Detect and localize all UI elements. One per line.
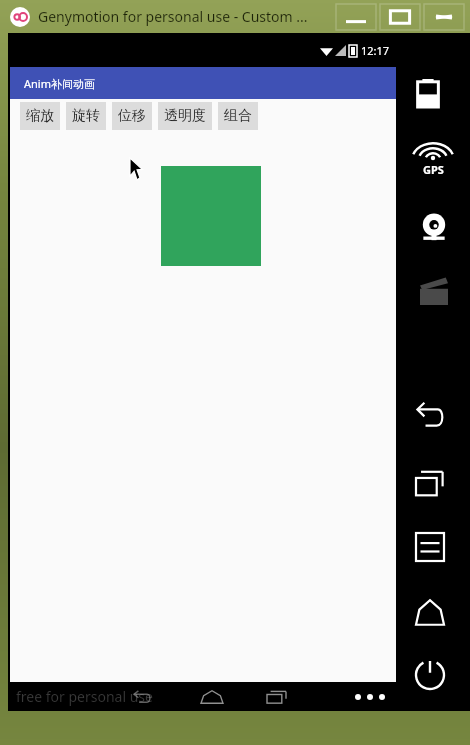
button[interactable]: 缩放 xyxy=(20,102,60,130)
button[interactable]: GPS xyxy=(412,143,454,177)
staticText: 旋转 xyxy=(72,107,100,125)
button[interactable]: More options xyxy=(352,694,388,700)
button[interactable]: 组合 xyxy=(218,102,258,130)
button[interactable]: Menu xyxy=(416,533,444,561)
button[interactable]: Home xyxy=(201,690,223,704)
staticText: Genymotion for personal use - Custom ... xyxy=(38,7,308,26)
button[interactable]: Recents xyxy=(267,690,287,704)
staticText: 12:17 xyxy=(361,43,390,58)
button[interactable]: Home xyxy=(416,599,444,627)
button[interactable]: Back xyxy=(416,401,444,429)
button[interactable]: Anim补间动画 xyxy=(10,67,396,99)
staticText: GPS xyxy=(423,162,444,177)
button[interactable]: Maximize xyxy=(380,4,420,30)
button[interactable]: Power xyxy=(416,661,444,689)
button[interactable]: Battery xyxy=(414,79,442,107)
button[interactable]: 旋转 xyxy=(66,102,106,130)
button[interactable]: Minimize xyxy=(336,4,376,30)
staticText: 组合 xyxy=(224,107,252,125)
button[interactable]: 位移 xyxy=(112,102,152,130)
button[interactable]: 透明度 xyxy=(158,102,212,130)
staticText: Anim补间动画 xyxy=(24,76,95,91)
button[interactable]: Camera xyxy=(420,213,448,241)
button[interactable]: Close xyxy=(424,4,464,30)
staticText: 缩放 xyxy=(26,107,54,125)
staticText: 透明度 xyxy=(164,107,206,125)
button[interactable]: Screen recording xyxy=(420,277,448,305)
button[interactable]: Back xyxy=(133,690,151,704)
staticText: free for personal use xyxy=(16,687,153,706)
button[interactable]: Recents xyxy=(416,469,444,497)
staticText: 位移 xyxy=(118,107,146,125)
